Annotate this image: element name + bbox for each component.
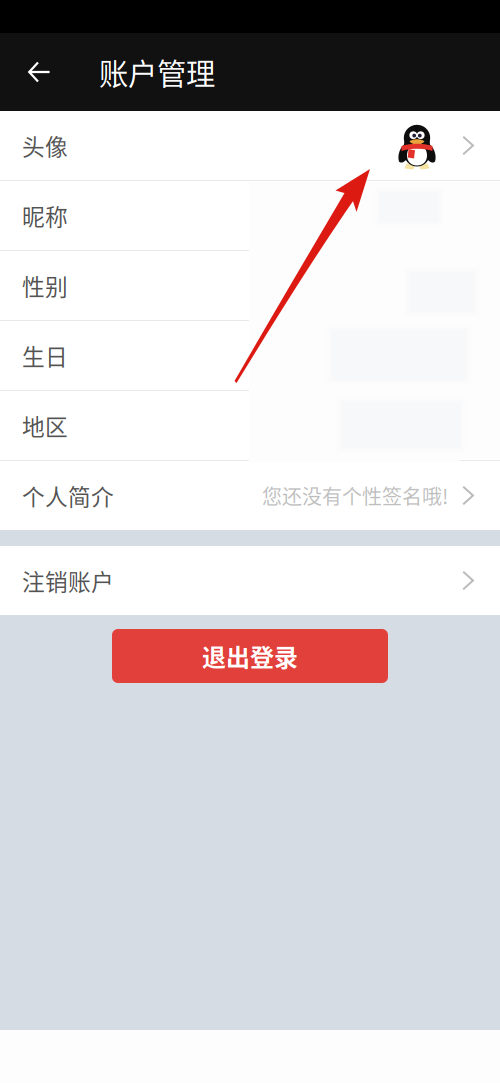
staticText: 注销账户 — [22, 564, 114, 597]
staticText: 个人简介 — [22, 479, 114, 512]
staticText: 地区 — [22, 409, 68, 442]
staticText: 生日 — [22, 339, 68, 372]
button[interactable]: 昵称 — [0, 181, 500, 250]
button[interactable]: Back — [0, 33, 99, 111]
button[interactable]: 注销账户 — [0, 546, 500, 615]
button[interactable]: 生日 — [0, 321, 500, 390]
staticText: 性别 — [22, 269, 68, 302]
staticText: 退出登录 — [202, 639, 298, 673]
button[interactable]: 个人简介 — [0, 461, 500, 530]
staticText: 账户管理 — [99, 51, 215, 93]
staticText: 您还没有个性签名哦! — [262, 481, 448, 510]
button[interactable]: 头像 — [0, 111, 500, 180]
staticText: 昵称 — [22, 199, 68, 232]
button[interactable]: 性别 — [0, 251, 500, 320]
staticText: 头像 — [22, 129, 68, 162]
button[interactable]: 地区 — [0, 391, 500, 460]
button[interactable]: 退出登录 — [112, 629, 388, 683]
